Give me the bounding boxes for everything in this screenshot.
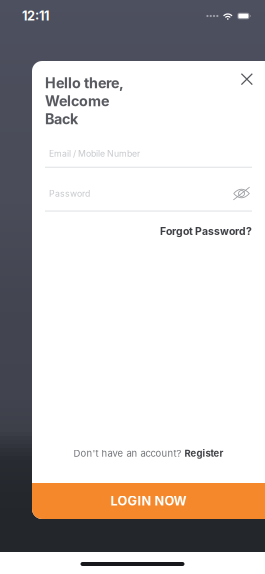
button[interactable]: Forgot Password? xyxy=(160,223,252,240)
staticText: Forgot Password? xyxy=(160,225,252,238)
staticText: LOGIN NOW xyxy=(110,493,186,509)
button[interactable]: LOGIN NOW xyxy=(32,483,265,519)
staticText: Email / Mobile Number xyxy=(49,148,140,159)
staticText: Welcome xyxy=(45,92,109,110)
staticText: Password xyxy=(49,188,90,199)
staticText: Hello there, xyxy=(45,74,124,92)
staticText: Don't have an account? xyxy=(73,447,184,459)
button[interactable]: Close xyxy=(237,69,257,89)
button[interactable]: Register xyxy=(184,447,223,459)
staticText: Register xyxy=(184,447,223,459)
staticText: 12:11 xyxy=(22,8,49,24)
button[interactable]: Show password xyxy=(231,184,252,202)
staticText: Back xyxy=(45,110,78,128)
